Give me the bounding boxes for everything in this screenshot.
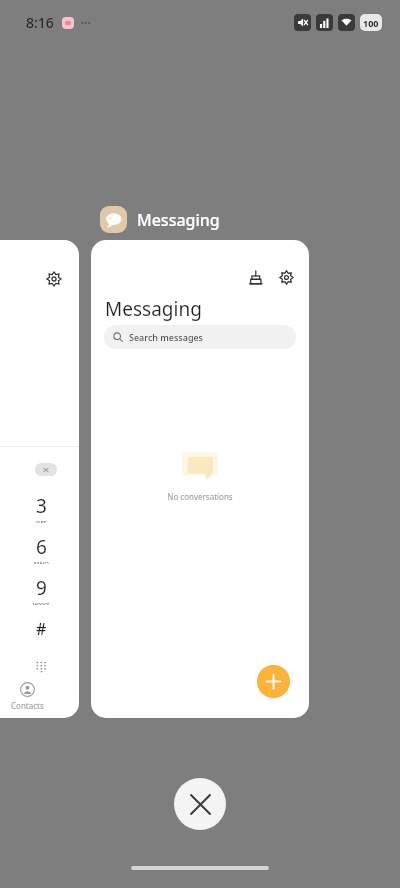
button[interactable]: 9 [22,575,60,605]
staticText: No conversations [167,491,233,502]
staticText: Contacts [11,700,44,711]
staticText: Search messages [129,331,203,343]
staticText: 3 [36,493,47,519]
button[interactable]: Backspace [35,463,57,476]
staticText: WXYZ [33,601,50,605]
button[interactable]: Settings [43,268,65,290]
staticText: DEF [36,519,47,523]
button[interactable]: Clean up [91,240,309,718]
staticText: MNO [34,560,49,564]
staticText: Messaging [105,296,202,322]
staticText: 6 [36,534,47,560]
button[interactable]: 6 [22,534,60,564]
button[interactable]: Settings [275,266,297,288]
button[interactable]: Settings [0,240,79,718]
button[interactable]: Messaging [100,206,220,233]
button[interactable]: Search messages [104,325,296,349]
staticText: 9 [36,575,47,601]
staticText: Messaging [137,209,220,231]
button[interactable]: 3 [22,493,60,523]
button[interactable]: Close all [174,778,226,830]
button[interactable]: # [24,616,58,642]
button[interactable]: Clean up [244,266,266,288]
button[interactable]: Contacts [11,682,44,711]
button[interactable]: New conversation [257,665,290,698]
staticText: # [36,618,47,640]
staticText: 8:16 [26,13,54,32]
staticText: 100 [363,17,379,29]
button[interactable]: Keypad [28,654,54,680]
